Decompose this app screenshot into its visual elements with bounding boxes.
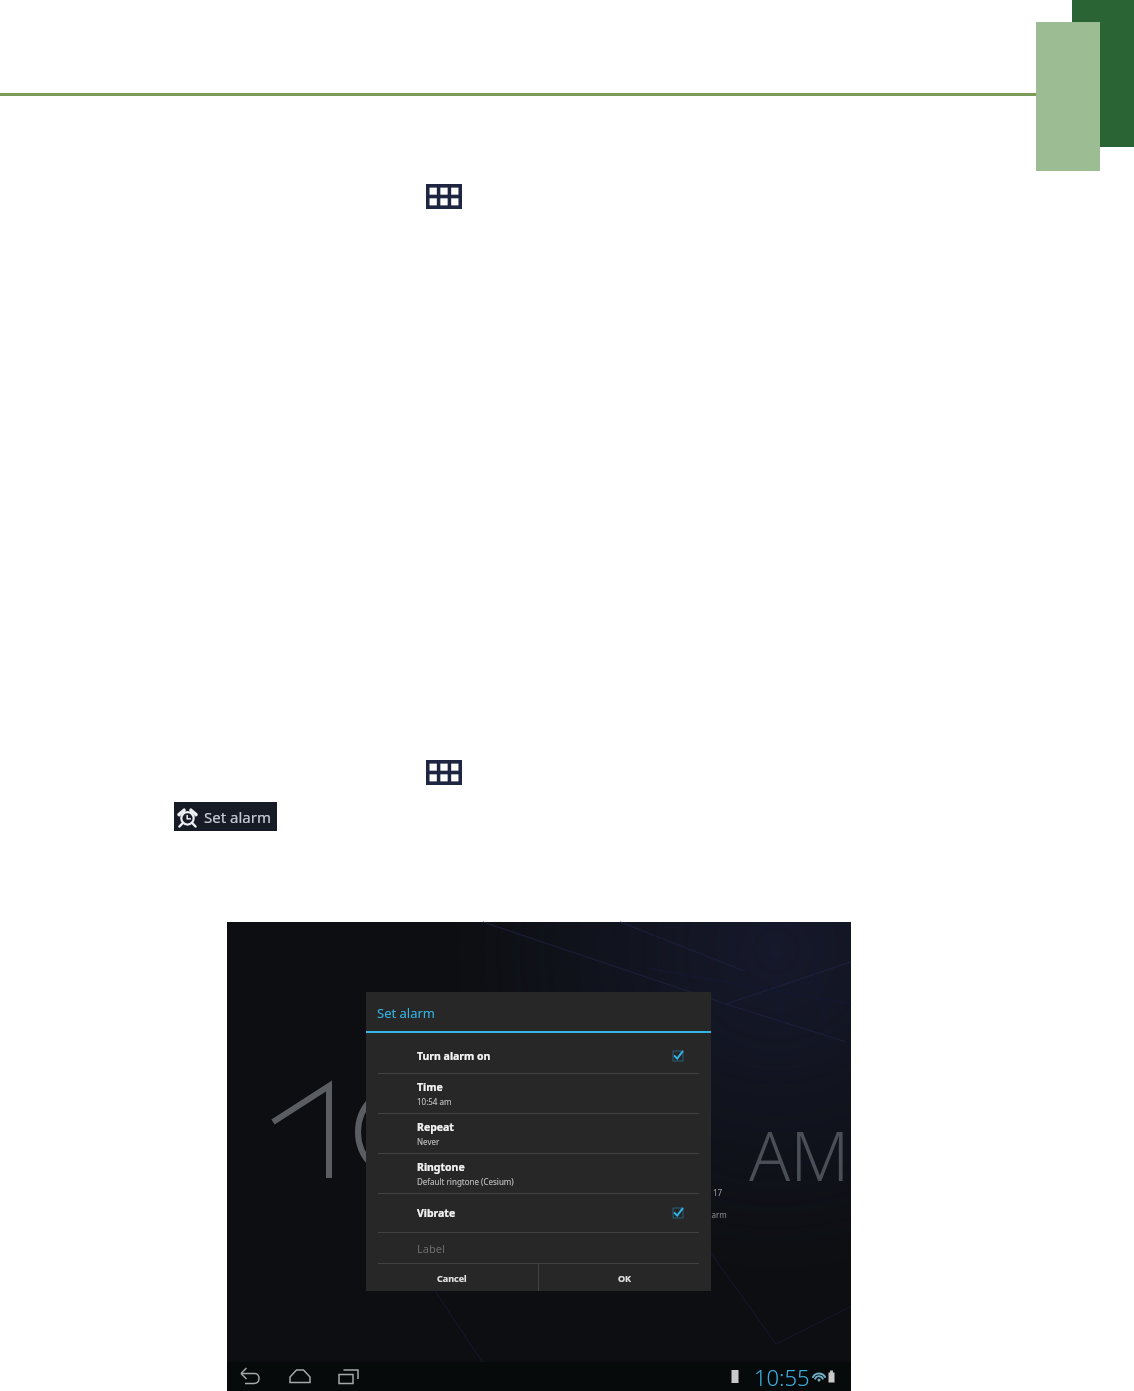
button[interactable]: Label: [366, 1233, 711, 1263]
button[interactable]: OK: [539, 1264, 711, 1291]
button[interactable]: Apps grid: [426, 760, 462, 785]
staticText: Set alarm: [204, 807, 271, 827]
staticText: 10:55: [754, 1362, 810, 1391]
staticText: OK: [618, 1272, 632, 1284]
button[interactable]: Repeat: [366, 1114, 711, 1153]
staticText: Vibrate: [417, 1206, 456, 1220]
button[interactable]: Apps grid: [426, 184, 462, 209]
staticText: 10:54 am: [417, 1096, 452, 1107]
staticText: Repeat: [417, 1120, 454, 1134]
staticText: Default ringtone (Cesium): [417, 1176, 514, 1187]
button[interactable]: Turn alarm on: [366, 1039, 711, 1073]
button[interactable]: Set alarm: [174, 802, 277, 831]
staticText: Cancel: [437, 1272, 467, 1284]
button[interactable]: Ringtone: [366, 1154, 711, 1193]
button[interactable]: Time: [366, 1074, 711, 1113]
button[interactable]: Cancel: [366, 1264, 538, 1291]
button[interactable]: Vibrate: [366, 1194, 711, 1232]
staticText: Never: [417, 1136, 440, 1147]
staticText: Set alarm: [377, 1004, 436, 1022]
staticText: alarm: [705, 1209, 727, 1220]
staticText: 17: [713, 1187, 723, 1198]
button[interactable]: Home: [284, 1362, 316, 1391]
staticText: Turn alarm on: [417, 1049, 491, 1063]
staticText: Time: [417, 1080, 443, 1094]
staticText: AM: [749, 1108, 850, 1201]
button[interactable]: Recent apps: [333, 1362, 365, 1391]
button[interactable]: Back: [235, 1362, 267, 1391]
staticText: Ringtone: [417, 1160, 465, 1174]
staticText: Label: [417, 1241, 445, 1256]
